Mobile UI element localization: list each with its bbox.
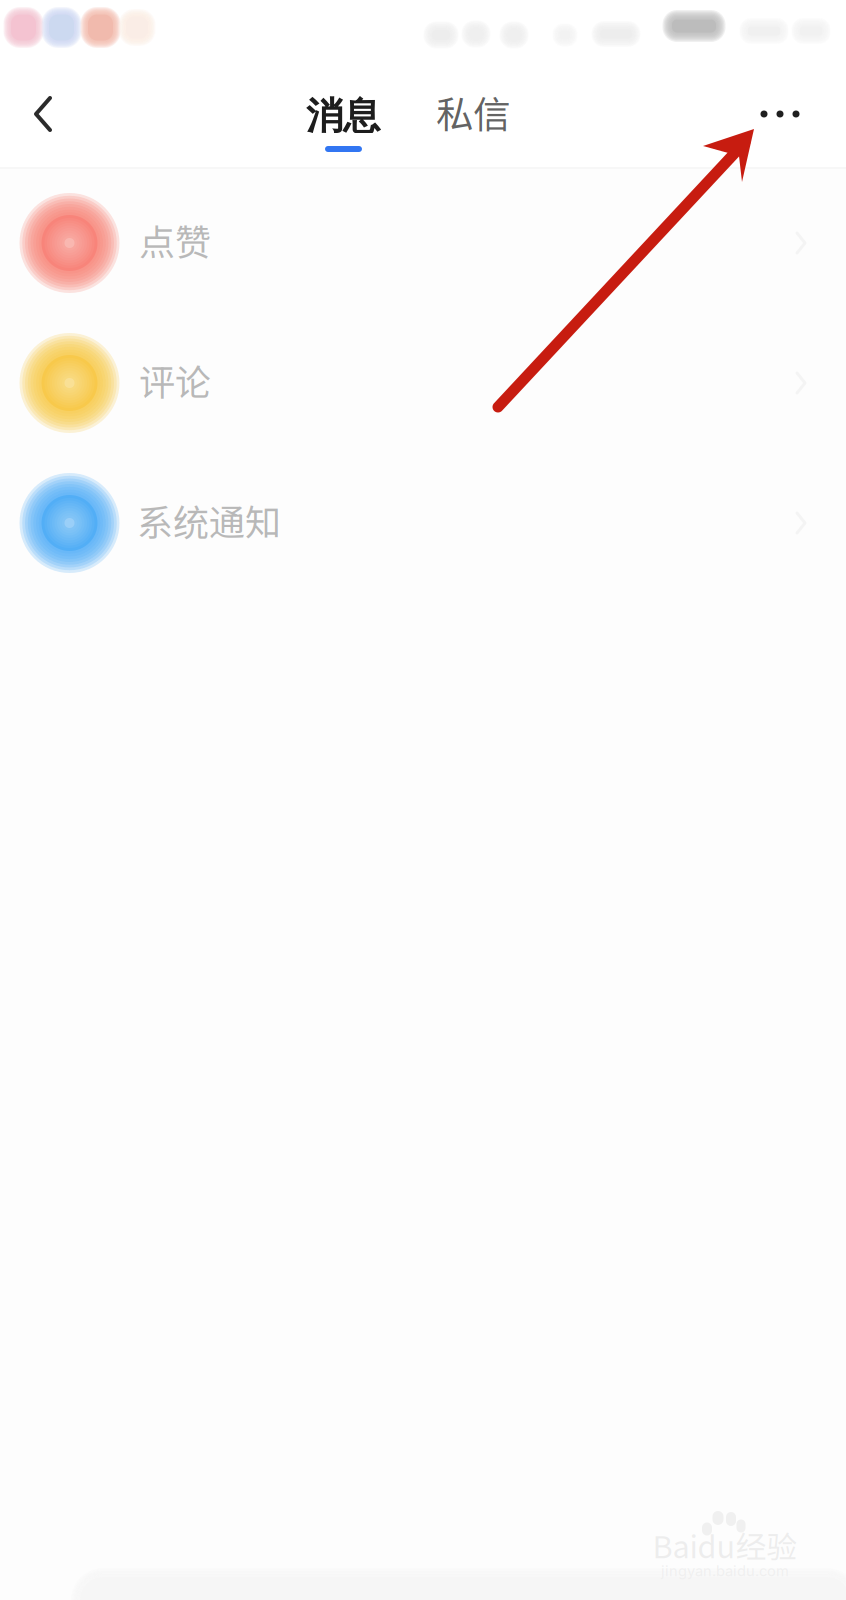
- button[interactable]: 系统通知: [0, 453, 846, 593]
- staticText: 点赞: [139, 214, 211, 266]
- button[interactable]: 点赞: [0, 173, 846, 313]
- button[interactable]: 消息: [287, 55, 399, 167]
- staticText: 私信: [436, 85, 510, 139]
- staticText: 系统通知: [137, 494, 281, 546]
- staticText: 评论: [139, 354, 211, 406]
- button[interactable]: More options: [742, 92, 817, 135]
- staticText: jingyan.baidu.com: [661, 1562, 789, 1580]
- button[interactable]: 评论: [0, 313, 846, 453]
- staticText: 消息: [306, 92, 380, 139]
- button[interactable]: Back: [17, 77, 69, 151]
- staticText: Baidu经验: [652, 1523, 797, 1567]
- button[interactable]: 私信: [425, 55, 521, 167]
